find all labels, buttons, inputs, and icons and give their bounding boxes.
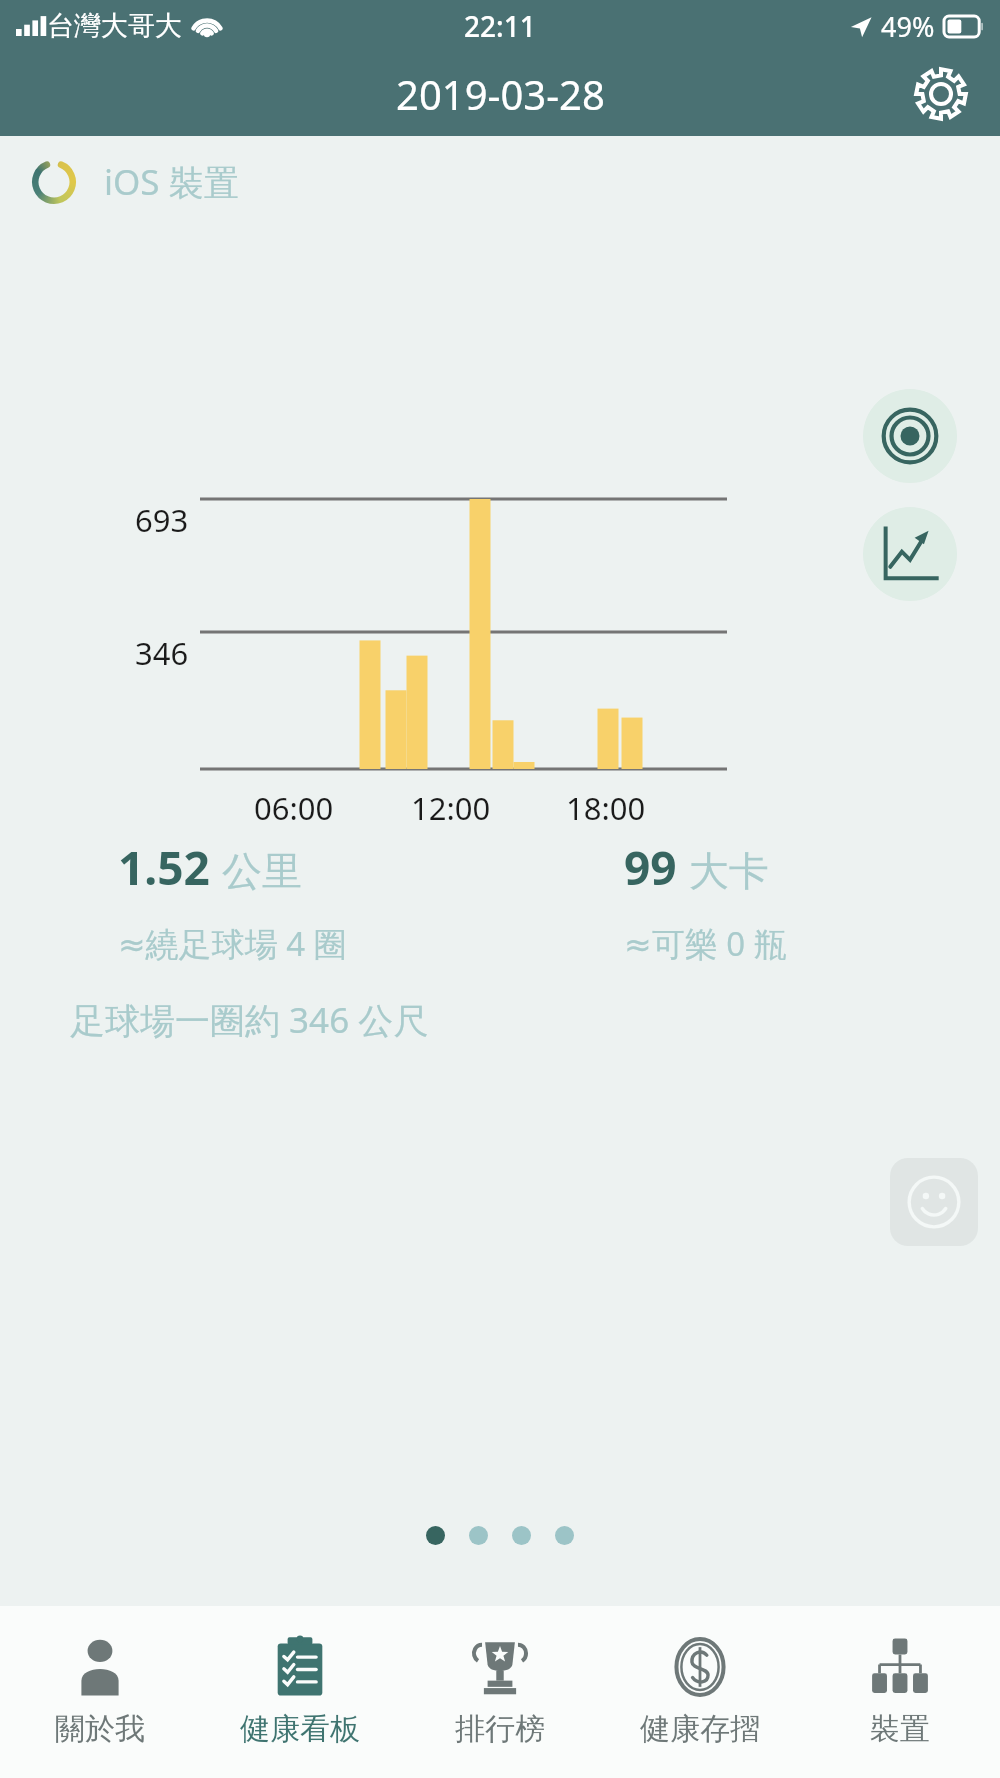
button[interactable]: Settings	[908, 61, 974, 127]
button[interactable]: Trend chart	[863, 507, 957, 601]
button[interactable]: iOS 裝置	[32, 158, 239, 206]
button[interactable]: Activity rings	[863, 389, 957, 483]
staticText: 裝置	[870, 1710, 930, 1748]
staticText: 693	[135, 499, 189, 541]
staticText: 足球場一圈約 346 公尺	[70, 996, 429, 1044]
staticText: 1.52	[118, 836, 210, 899]
staticText: 2019-03-28	[396, 67, 605, 121]
button[interactable]: 健康看板	[200, 1606, 400, 1778]
button[interactable]: 裝置	[800, 1606, 1000, 1778]
staticText: 49%	[881, 8, 935, 45]
staticText: 排行榜	[455, 1710, 545, 1748]
button[interactable]: 關於我	[0, 1606, 200, 1778]
staticText: 22:11	[464, 7, 536, 45]
staticText: ≈繞足球場 4 圈	[118, 921, 347, 966]
button[interactable]: Feedback	[890, 1158, 978, 1246]
staticText: 12:00	[411, 787, 491, 829]
staticText: 台灣大哥大	[47, 9, 182, 43]
staticText: 99	[624, 836, 677, 899]
staticText: 06:00	[254, 787, 334, 829]
staticText: 健康看板	[240, 1710, 360, 1748]
button[interactable]: 排行榜	[400, 1606, 600, 1778]
staticText: 346	[135, 632, 189, 674]
staticText: iOS 裝置	[104, 158, 239, 206]
staticText: 大卡	[689, 846, 769, 896]
button[interactable]: 健康存摺	[600, 1606, 800, 1778]
staticText: 健康存摺	[640, 1710, 760, 1748]
staticText: 公里	[222, 846, 302, 896]
staticText: 18:00	[566, 787, 646, 829]
staticText: 關於我	[55, 1710, 145, 1748]
staticText: ≈可樂 0 瓶	[624, 921, 787, 966]
